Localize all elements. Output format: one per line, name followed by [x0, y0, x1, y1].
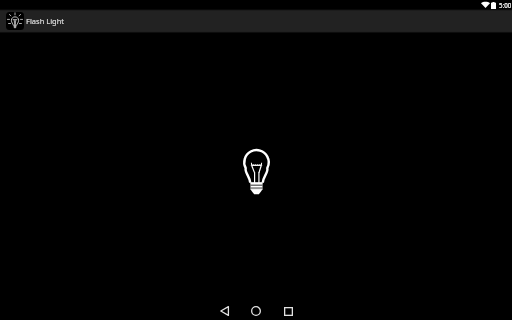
button[interactable]: Flash Light	[0, 10, 512, 32]
button[interactable]: Recents	[276, 299, 300, 320]
staticText: 5:00	[499, 0, 512, 10]
button[interactable]: Toggle flash light	[243, 149, 270, 194]
staticText: Flash Light	[26, 16, 65, 26]
button[interactable]: Home	[244, 299, 268, 320]
button[interactable]: Back	[212, 299, 236, 320]
